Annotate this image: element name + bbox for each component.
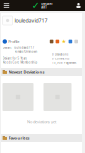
- button[interactable]: Profile: [3, 39, 19, 44]
- staticText: 0 Comments: [52, 57, 69, 60]
- staticText: louledavid717: [14, 46, 35, 49]
- staticText: 0 Deviations: [52, 53, 68, 56]
- staticText: Profile: [8, 39, 19, 44]
- staticText: Deviant for 5 Years: [3, 57, 27, 60]
- staticText: DEVIANT: [41, 2, 53, 5]
- staticText: Newest Deviations: [9, 69, 45, 75]
- staticText: 15,908 Pageviews: [52, 61, 76, 64]
- staticText: Favourites: [9, 135, 30, 141]
- staticText: Needs Core Membership: [3, 61, 38, 64]
- staticText: ✓: [32, 0, 40, 11]
- staticText: ART: [41, 6, 47, 9]
- button[interactable]: Menu: [0, 0, 13, 11]
- button[interactable]: Account: [72, 0, 85, 11]
- staticText: Deviant: [3, 46, 12, 49]
- staticText: Female/Unknown: [15, 50, 38, 53]
- staticText: No deviations yet: [27, 119, 56, 124]
- staticText: ★: [61, 38, 66, 45]
- staticText: louledavid717: [15, 17, 48, 24]
